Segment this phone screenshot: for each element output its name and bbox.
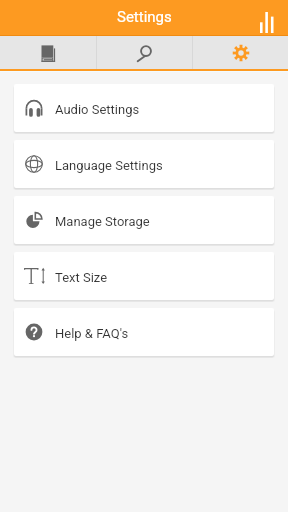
staticText: Text Size [55,270,108,285]
button[interactable]: Manage Storage [14,196,274,244]
button[interactable]: Library [0,36,96,69]
staticText: Audio Settings [55,102,140,117]
button[interactable]: Statistics [260,12,274,33]
staticText: Language Settings [55,158,163,173]
button[interactable]: Search [97,36,192,69]
staticText: Settings [117,8,172,26]
button[interactable]: Language Settings [14,140,274,188]
button[interactable]: Settings [193,36,288,69]
button[interactable]: Audio Settings [14,84,274,132]
button[interactable]: Help & FAQ's [14,308,274,356]
staticText: Help & FAQ's [55,326,129,341]
button[interactable]: Text Size [14,252,274,300]
staticText: Manage Storage [55,214,150,229]
